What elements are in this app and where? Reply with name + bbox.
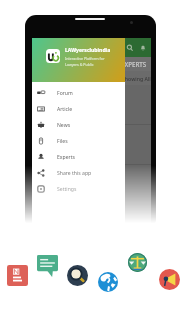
staticText: FORUM — [60, 60, 83, 68]
staticText: Experts — [57, 154, 75, 161]
staticText: EXPERTS — [121, 60, 147, 68]
button[interactable]: Share this app — [32, 165, 125, 181]
staticText: Showing All — [122, 75, 151, 82]
staticText: Share this app — [57, 170, 92, 177]
button[interactable]: Search — [67, 265, 88, 286]
staticText: Files — [57, 138, 68, 145]
button[interactable]: Notifications — [138, 43, 148, 53]
button[interactable]: Search — [125, 43, 135, 53]
button[interactable]: Files — [32, 133, 125, 149]
staticText: LAWyersclubindia — [65, 47, 111, 54]
button[interactable]: Web — [98, 272, 118, 292]
staticText: News — [57, 122, 71, 129]
button[interactable]: News — [32, 117, 125, 133]
button[interactable]: Article — [32, 101, 125, 117]
staticText: Forum — [57, 90, 73, 97]
button[interactable]: Law — [128, 253, 147, 272]
button[interactable]: Settings — [32, 181, 125, 197]
button[interactable]: Forum — [32, 85, 125, 101]
staticText: Settings — [57, 186, 77, 193]
button[interactable]: News — [7, 265, 28, 286]
staticText: Article — [57, 106, 73, 113]
button[interactable]: Forum — [37, 255, 58, 277]
staticText: Interactive Platform for Lawyers & Publi… — [65, 56, 105, 67]
button[interactable]: Announcements — [159, 269, 180, 290]
button[interactable]: Experts — [32, 149, 125, 165]
